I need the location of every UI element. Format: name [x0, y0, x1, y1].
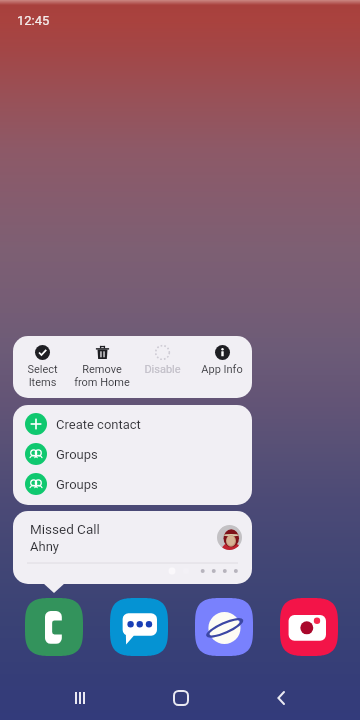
staticText: Remove from Home — [74, 363, 130, 388]
button[interactable]: Groups — [13, 439, 252, 469]
staticText: 12:45 — [17, 13, 50, 28]
staticText: Missed Call — [30, 521, 100, 537]
staticText: App Info — [201, 363, 243, 376]
staticText: Disable — [144, 363, 181, 376]
staticText: Groups — [56, 447, 98, 462]
button[interactable]: Groups — [13, 469, 252, 499]
staticText: Groups — [56, 477, 98, 492]
button[interactable]: Phone — [25, 598, 83, 656]
button[interactable]: Recents — [54, 676, 106, 720]
button[interactable]: Remove from Home — [72, 336, 132, 398]
button[interactable]: Back — [255, 676, 307, 720]
button[interactable]: Camera — [280, 598, 338, 656]
staticText: Create contact — [56, 417, 141, 432]
button[interactable]: Select Items — [13, 336, 72, 398]
button[interactable]: App Info — [192, 336, 252, 398]
button[interactable]: Create contact — [13, 409, 252, 439]
staticText: Select Items — [27, 363, 58, 388]
button[interactable]: Disable — [132, 336, 192, 398]
button[interactable]: Messages — [110, 598, 168, 656]
button[interactable]: Home — [155, 676, 207, 720]
button[interactable]: Internet — [195, 598, 253, 656]
staticText: Ahny — [30, 539, 59, 554]
